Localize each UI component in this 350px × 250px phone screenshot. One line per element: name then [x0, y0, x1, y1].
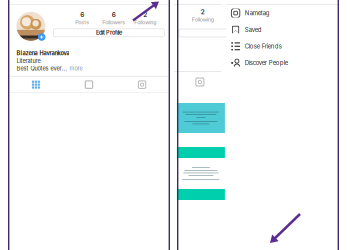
button[interactable]: 2	[187, 8, 218, 23]
button[interactable]: Quote post two	[177, 147, 225, 200]
staticText: Nametag	[245, 9, 270, 17]
staticText: Followers	[102, 19, 125, 25]
staticText: more	[69, 65, 82, 72]
staticText: Literature	[16, 57, 40, 64]
button[interactable]: 2	[129, 11, 161, 25]
staticText: Saved	[245, 26, 262, 33]
button[interactable]: 6	[98, 11, 129, 25]
staticText: Best Quotes ever...	[16, 65, 67, 72]
button[interactable]: Edit Profile	[53, 29, 164, 37]
staticText: Following	[192, 16, 214, 23]
button[interactable]: Quote post one	[177, 103, 225, 133]
staticText: 2	[201, 8, 205, 16]
button[interactable]: Close Friends	[226, 38, 338, 55]
staticText: Edit Profile	[96, 29, 122, 36]
staticText: Following	[134, 19, 156, 25]
staticText: 2	[143, 11, 147, 18]
staticText: Discover People	[245, 59, 288, 67]
staticText: Blazena Havrankova	[16, 50, 69, 57]
button[interactable]: Saved	[226, 21, 338, 38]
button[interactable]: 6	[66, 11, 98, 25]
button[interactable]: Grid posts	[9, 80, 62, 89]
staticText: 6	[80, 11, 84, 18]
button[interactable]: Tagged posts	[196, 78, 204, 86]
button[interactable]: List posts	[62, 81, 116, 88]
staticText: Posts	[75, 19, 89, 25]
button[interactable]: Nametag	[226, 5, 338, 21]
button[interactable]: Tagged posts	[115, 81, 169, 88]
staticText: Close Friends	[245, 43, 282, 50]
staticText: 6	[112, 11, 116, 18]
button[interactable]	[179, 29, 231, 37]
button[interactable]: Discover People	[226, 55, 338, 71]
